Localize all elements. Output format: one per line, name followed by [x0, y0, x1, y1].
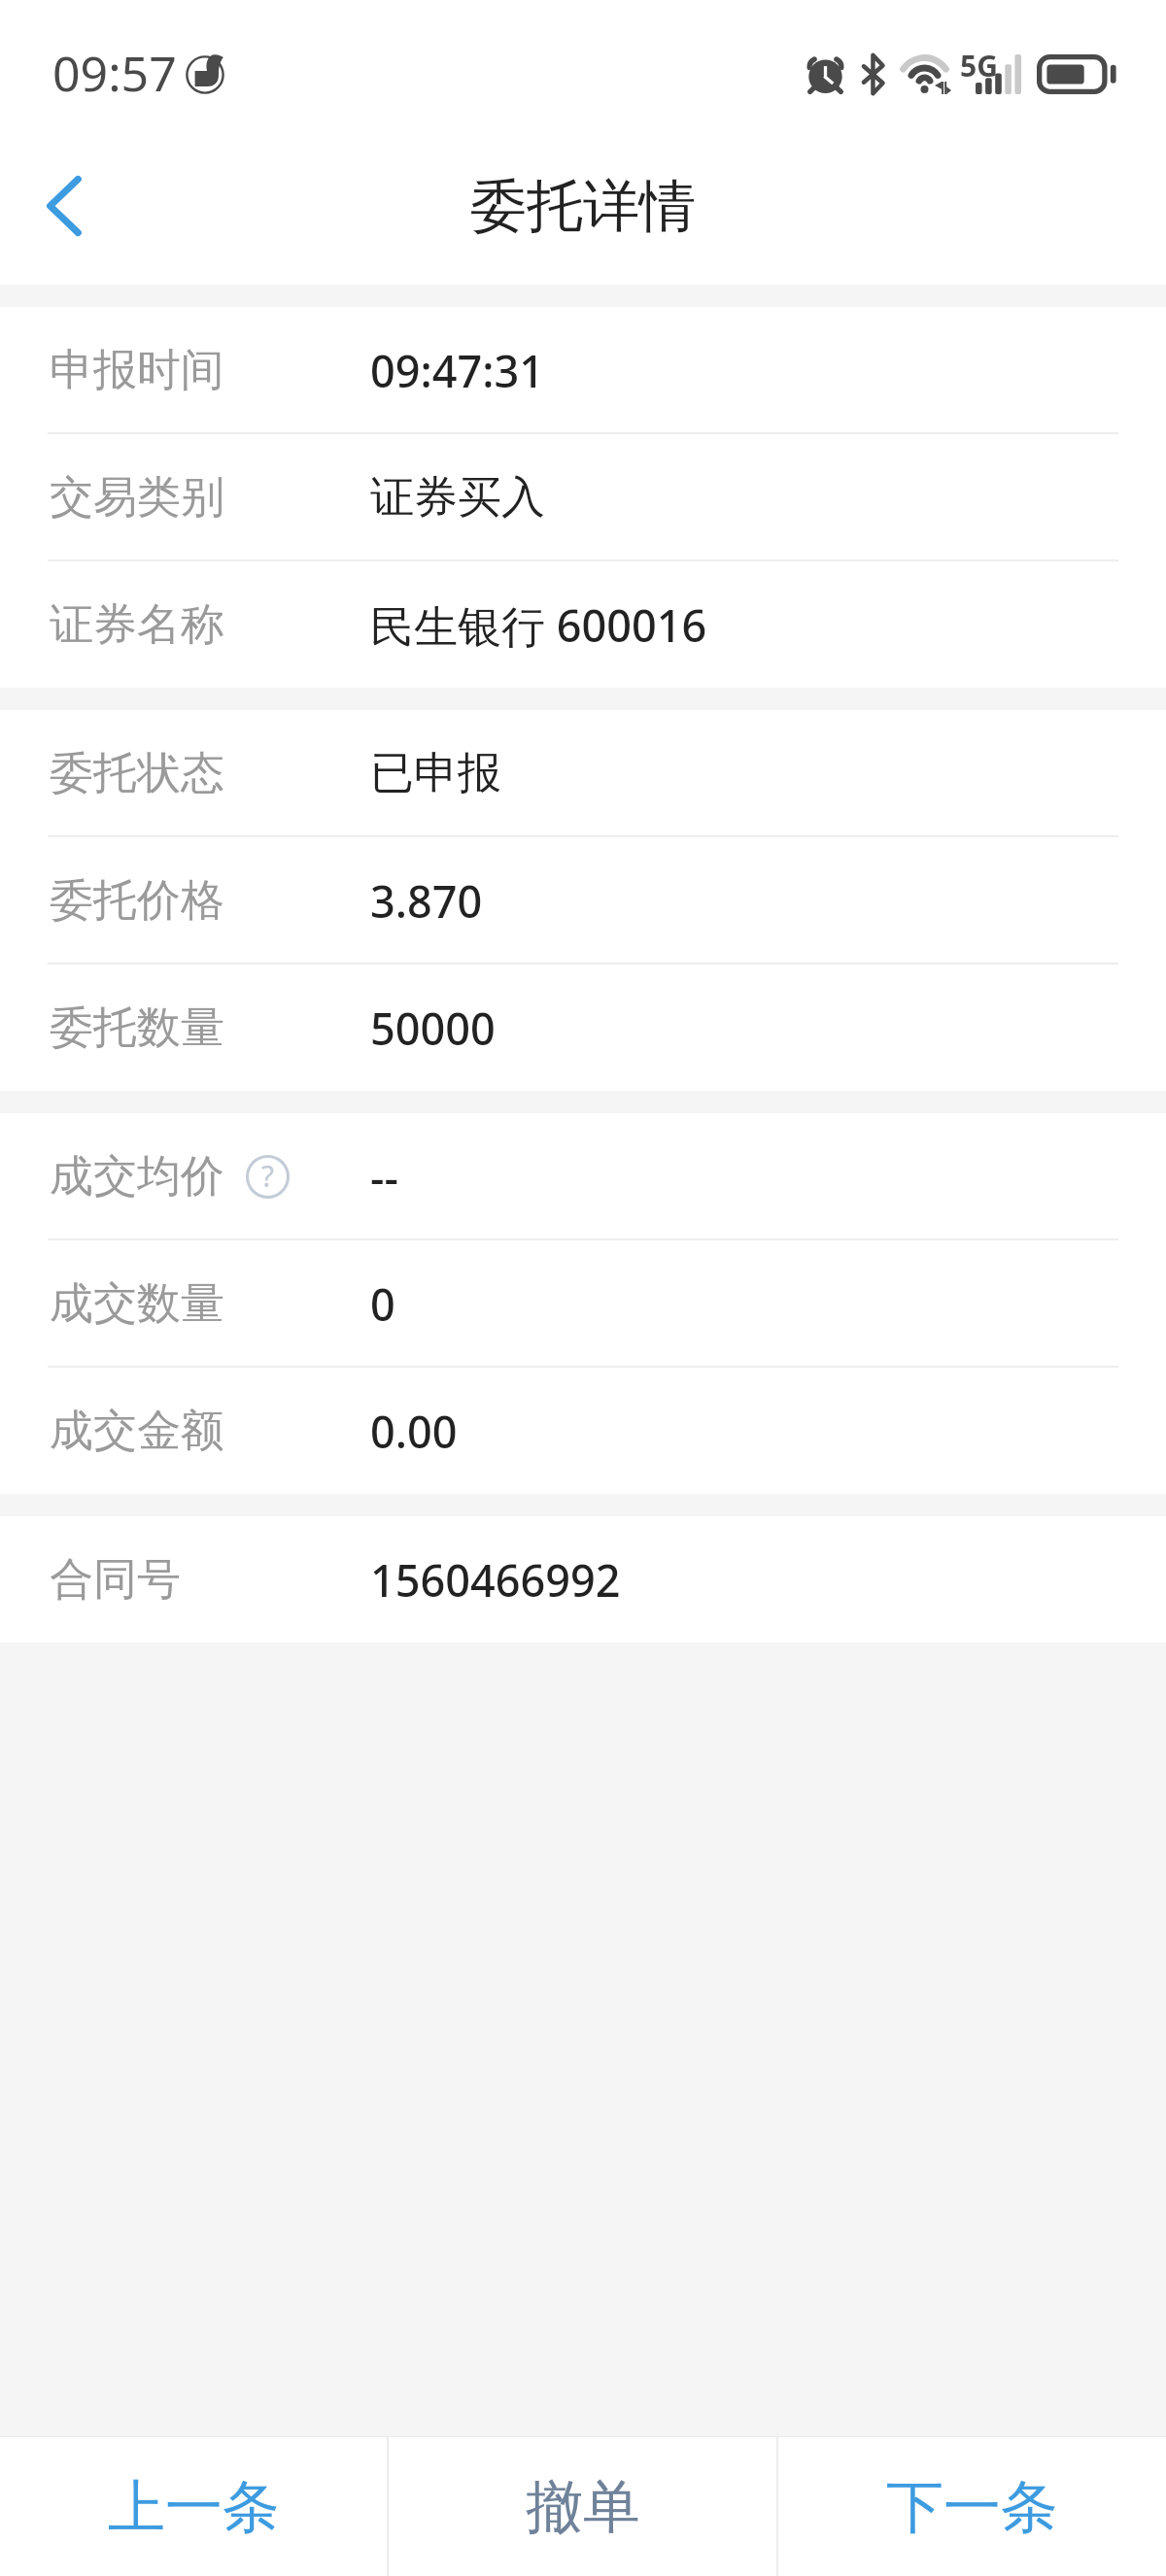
button[interactable]: 委托数量	[0, 965, 1166, 1091]
staticText: 委托详情	[470, 171, 696, 242]
button[interactable]: 成交数量	[0, 1240, 1166, 1368]
staticText: 证券买入	[370, 470, 545, 525]
staticText: 3.870	[370, 871, 483, 931]
staticText: 50000	[370, 999, 496, 1058]
button[interactable]: 委托状态	[0, 710, 1166, 837]
staticText: 证券名称	[50, 597, 224, 653]
staticText: 1560466992	[370, 1550, 621, 1610]
staticText: 成交均价	[50, 1149, 224, 1204]
button[interactable]: 撤单	[389, 2437, 776, 2576]
staticText: 0.00	[370, 1402, 458, 1461]
staticText: 09:57	[52, 40, 177, 106]
staticText: 交易类别	[50, 470, 224, 525]
staticText: 委托状态	[50, 746, 224, 801]
button[interactable]: 上一条	[0, 2437, 387, 2576]
button[interactable]: 下一条	[778, 2437, 1166, 2576]
button[interactable]: 交易类别	[0, 434, 1166, 561]
staticText: 已申报	[370, 746, 501, 801]
button[interactable]: 成交均价	[0, 1113, 1166, 1240]
staticText: 申报时间	[50, 343, 224, 398]
staticText: 5G	[960, 46, 998, 85]
button[interactable]: 申报时间	[0, 307, 1166, 434]
staticText: ?	[261, 1156, 275, 1196]
staticText: 成交金额	[50, 1404, 224, 1459]
staticText: 上一条	[108, 2471, 280, 2543]
staticText: 下一条	[886, 2471, 1058, 2543]
staticText: --	[370, 1147, 398, 1206]
staticText: 0	[370, 1274, 395, 1334]
button[interactable]: 证券名称	[0, 561, 1166, 688]
staticText: 委托价格	[50, 873, 224, 929]
staticText: 委托数量	[50, 1000, 224, 1056]
staticText: 成交数量	[50, 1276, 224, 1332]
button[interactable]: Back	[0, 127, 126, 285]
staticText: 民生银行 600016	[370, 595, 707, 655]
button[interactable]: 合同号	[0, 1516, 1166, 1643]
staticText: 撤单	[526, 2471, 640, 2543]
button[interactable]: 成交金额	[0, 1368, 1166, 1494]
staticText: 09:47:31	[370, 341, 544, 400]
button[interactable]: 委托价格	[0, 837, 1166, 965]
staticText: 合同号	[50, 1552, 181, 1608]
